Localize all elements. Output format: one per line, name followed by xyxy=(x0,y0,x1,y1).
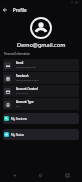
staticText: Pro xyxy=(16,105,20,108)
staticText: My Sessions xyxy=(11,117,27,121)
button[interactable]: Back xyxy=(8,169,21,182)
button[interactable]: Recent apps xyxy=(61,169,74,182)
staticText: user@facebook.com xyxy=(16,79,39,82)
staticText: Personal Information xyxy=(4,52,30,56)
staticText: Account Created xyxy=(16,87,38,91)
button[interactable]: My Status xyxy=(3,129,79,140)
staticText: Facebook xyxy=(16,74,29,78)
button[interactable]: Account Type xyxy=(3,98,79,110)
staticText: Email xyxy=(16,61,24,65)
button[interactable]: Facebook xyxy=(3,72,79,84)
staticText: demo@gmail.com xyxy=(16,66,36,69)
staticText: Demo@gmail.com xyxy=(17,41,66,49)
button[interactable]: Back xyxy=(0,5,10,15)
button[interactable]: Home xyxy=(34,169,47,182)
staticText: Profile xyxy=(13,7,27,13)
button[interactable]: Email xyxy=(3,59,79,71)
staticText: Account Type xyxy=(16,100,34,104)
button[interactable]: My Sessions xyxy=(3,113,79,124)
staticText: My Status xyxy=(11,133,24,137)
staticText: 2021-05-26 xyxy=(16,92,28,95)
button[interactable]: Account Created xyxy=(3,85,79,97)
